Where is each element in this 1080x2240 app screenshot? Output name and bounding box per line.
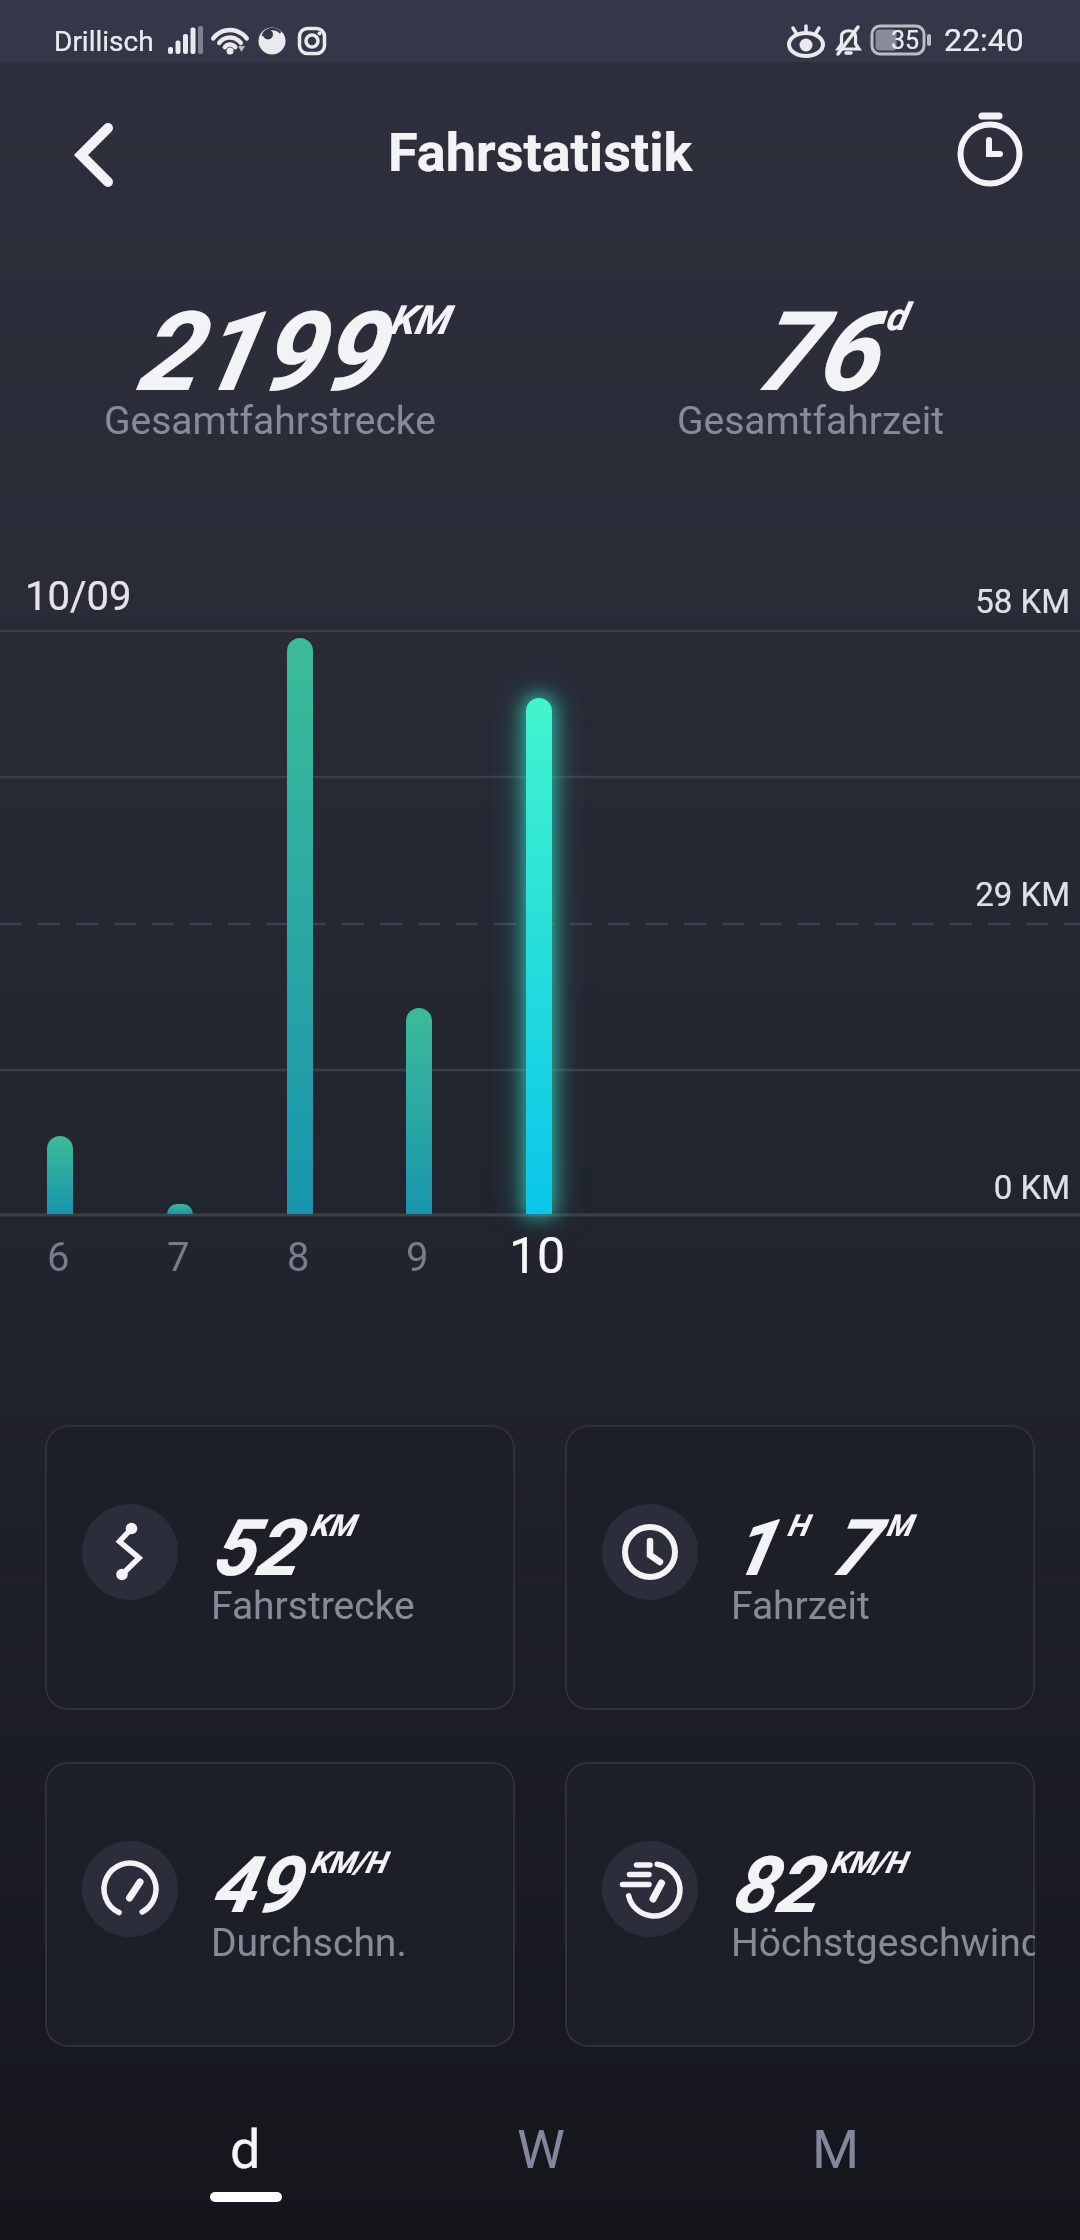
staticText: M	[812, 2118, 860, 2181]
staticText: KM/H	[830, 1845, 906, 1880]
staticText: 1	[731, 1503, 775, 1594]
button[interactable]	[50, 110, 140, 200]
button[interactable]: W	[393, 2118, 688, 2181]
staticText: 76	[754, 288, 877, 417]
button[interactable]: d	[98, 2118, 393, 2202]
staticText: KM	[310, 1508, 354, 1543]
staticText: KM	[389, 297, 448, 344]
staticText: 29 KM	[905, 875, 1070, 914]
staticText: 52	[211, 1503, 298, 1594]
staticText: Gesamtfahrstrecke	[104, 398, 436, 444]
staticText: 6	[47, 1234, 70, 1281]
button[interactable]: 82	[565, 1762, 1035, 2047]
staticText: H	[787, 1508, 808, 1543]
staticText: d	[230, 2118, 261, 2181]
staticText: Durchschn.	[211, 1920, 407, 1966]
staticText: 10	[509, 1227, 566, 1286]
button[interactable]	[940, 100, 1040, 208]
staticText: 35	[891, 26, 920, 55]
staticText: Fahrstatistik	[388, 121, 693, 184]
staticText: 8	[287, 1234, 310, 1281]
button[interactable]: 1	[565, 1425, 1035, 1710]
staticText: 7	[830, 1503, 874, 1594]
staticText: W	[517, 2118, 565, 2181]
staticText: 22:40	[944, 21, 1024, 59]
staticText: 49	[211, 1840, 298, 1931]
staticText: 10/09	[25, 573, 132, 620]
staticText: 82	[731, 1840, 818, 1931]
staticText: 58 KM	[905, 582, 1070, 621]
button[interactable]: 52	[45, 1425, 515, 1710]
staticText: 9	[406, 1234, 429, 1281]
staticText: 0 KM	[905, 1168, 1070, 1207]
staticText: Drillisch	[54, 25, 154, 58]
staticText: M	[886, 1508, 912, 1543]
button[interactable]: M	[688, 2118, 983, 2181]
staticText: Höchstgeschwindi	[731, 1920, 1035, 1966]
staticText: 7	[167, 1234, 190, 1281]
button[interactable]: 49	[45, 1762, 515, 2047]
staticText: KM/H	[310, 1845, 386, 1880]
staticText: d	[885, 295, 906, 340]
staticText: 2199	[136, 288, 381, 417]
staticText: Fahrstrecke	[211, 1583, 415, 1629]
staticText: Fahrzeit	[731, 1583, 870, 1629]
staticText: Gesamtfahrzeit	[677, 398, 944, 444]
